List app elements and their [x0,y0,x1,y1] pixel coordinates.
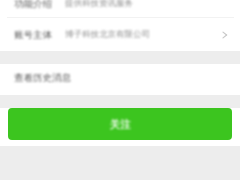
staticText: 博子科技北京有限公司 [65,29,150,40]
staticText: 账号主体 [14,29,52,41]
button[interactable]: 功能介绍 [0,0,240,17]
staticText: 功能介绍 [14,0,52,10]
staticText: 关注 [110,118,131,131]
button[interactable]: 关注 [8,108,232,140]
button[interactable]: 账号主体 [0,18,240,51]
other: More [220,29,232,41]
button[interactable]: 查看历史消息 [0,64,240,95]
staticText: 查看历史消息 [14,72,71,84]
staticText: 提供科技资讯服务 [65,0,133,9]
